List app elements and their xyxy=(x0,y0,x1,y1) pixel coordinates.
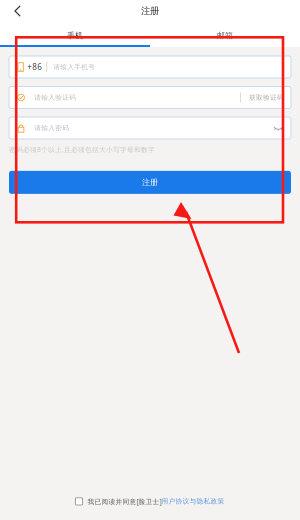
button[interactable]: 用户协议与隐私政策 xyxy=(162,497,225,505)
staticText: 请输入手机号 xyxy=(53,63,95,71)
button[interactable]: 获取验证码 xyxy=(241,93,291,102)
button[interactable]: 手机 xyxy=(0,22,150,45)
button[interactable]: Show password xyxy=(274,125,291,131)
staticText: 请输入密码 xyxy=(34,124,69,132)
staticText: 密码必须8个以上,且必须包括大小写字母和数字 xyxy=(9,145,155,154)
staticText: 注册 xyxy=(142,177,158,187)
staticText: 请输入验证码 xyxy=(34,93,76,102)
staticText: 获取验证码 xyxy=(249,93,284,102)
button[interactable]: Back xyxy=(0,0,39,22)
staticText: 手机 xyxy=(67,31,83,40)
staticText: 邮箱 xyxy=(217,31,233,40)
staticText: 我已阅读并同意[脸卫士] xyxy=(88,497,162,506)
staticText: 注册 xyxy=(141,5,159,17)
staticText: +86 xyxy=(27,62,42,72)
staticText: 用户协议与隐私政策 xyxy=(162,497,225,505)
button[interactable]: Agree to terms xyxy=(75,496,83,507)
button[interactable]: 注册 xyxy=(0,171,300,194)
button[interactable]: 邮箱 xyxy=(150,22,300,45)
